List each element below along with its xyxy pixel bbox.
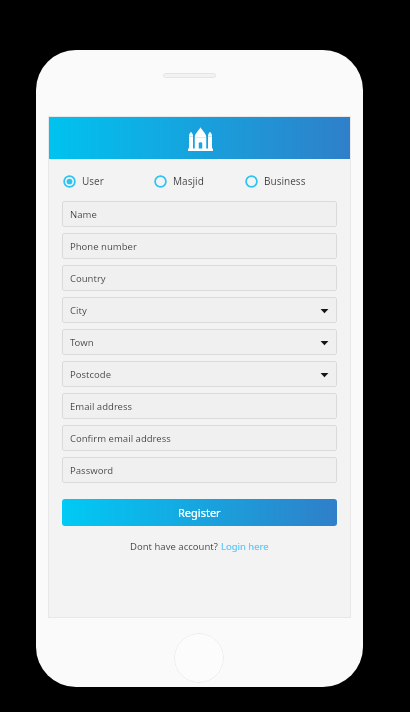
staticText: Town: [70, 336, 94, 349]
staticText: Phone number: [70, 240, 137, 253]
button[interactable]: City: [62, 297, 337, 323]
button[interactable]: Phone number: [62, 233, 337, 259]
button[interactable]: Country: [62, 265, 337, 291]
button[interactable]: Business: [245, 172, 336, 190]
staticText: Postcode: [70, 368, 111, 381]
button[interactable]: Register: [62, 499, 337, 526]
button[interactable]: Masjid: [154, 172, 245, 190]
button[interactable]: Confirm email address: [62, 425, 337, 451]
staticText: Name: [70, 208, 97, 221]
button[interactable]: Masjid app logo: [184, 122, 216, 154]
button[interactable]: User: [63, 172, 154, 190]
button[interactable]: Town: [62, 329, 337, 355]
staticText: Business: [264, 174, 306, 188]
staticText: Dont have account?: [130, 540, 221, 553]
button[interactable]: Password: [62, 457, 337, 483]
staticText: User: [82, 174, 104, 188]
staticText: Password: [70, 464, 113, 477]
staticText: Confirm email address: [70, 432, 171, 445]
staticText: City: [70, 304, 87, 317]
staticText: Login here: [221, 540, 269, 553]
button[interactable]: Postcode: [62, 361, 337, 387]
button[interactable]: Name: [62, 201, 337, 227]
button[interactable]: Login here: [221, 540, 269, 553]
staticText: Email address: [70, 400, 133, 413]
staticText: Masjid: [173, 174, 204, 188]
button[interactable]: Email address: [62, 393, 337, 419]
staticText: Country: [70, 272, 106, 285]
staticText: Register: [178, 505, 221, 520]
